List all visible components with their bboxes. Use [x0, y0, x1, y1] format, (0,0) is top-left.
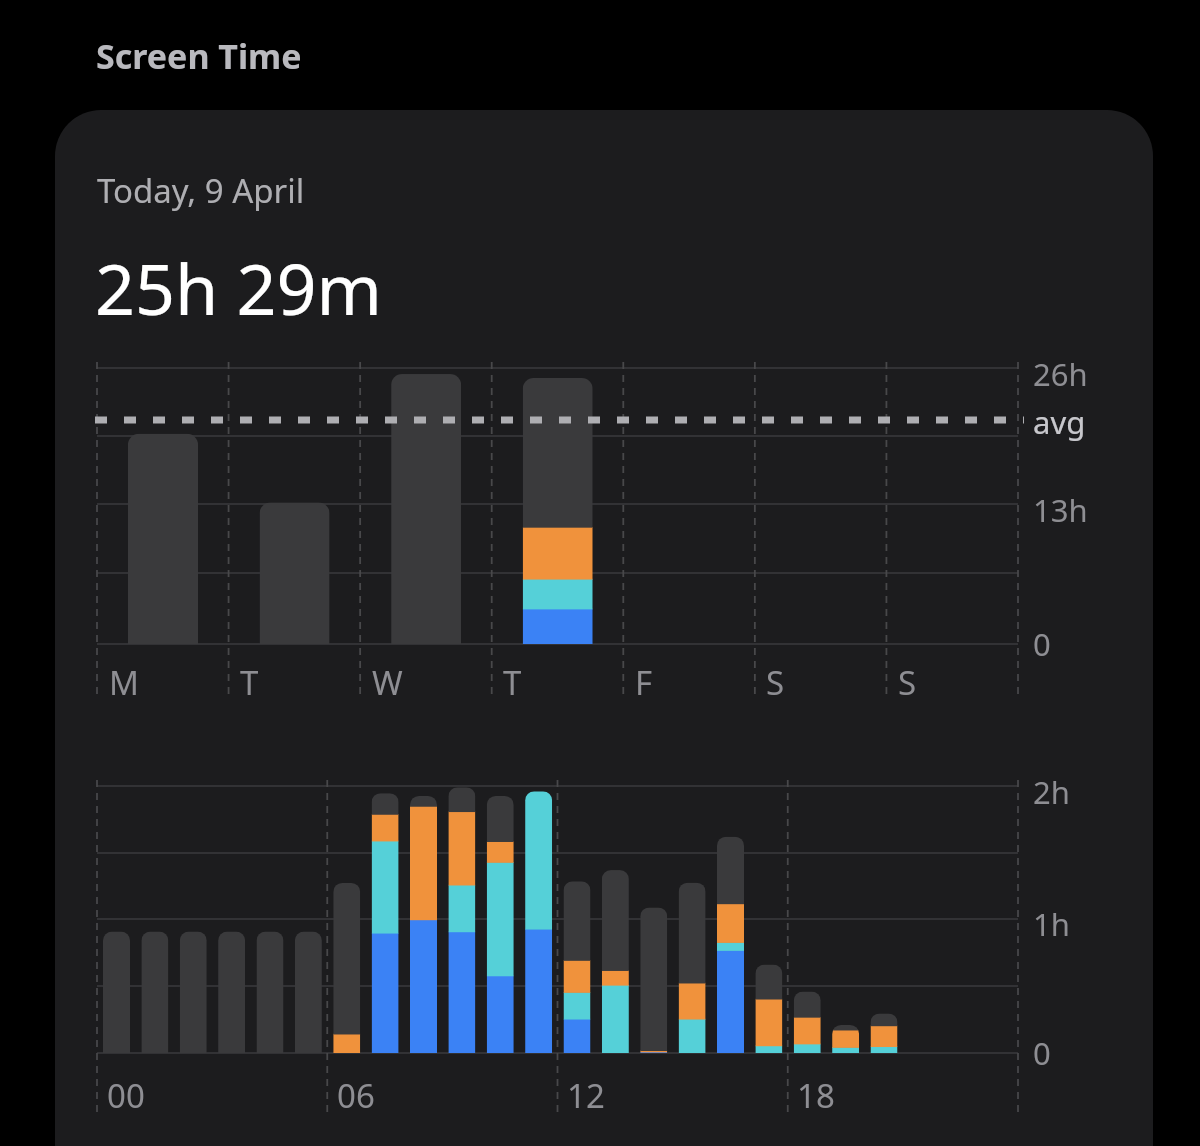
staticText: S: [766, 660, 785, 705]
staticText: avg: [1033, 401, 1086, 443]
staticText: 13h: [1033, 489, 1088, 531]
staticText: W: [372, 660, 403, 705]
staticText: Screen Time: [96, 33, 302, 79]
staticText: Today, 9 April: [97, 168, 305, 213]
staticText: T: [240, 660, 259, 705]
staticText: 00: [107, 1073, 145, 1118]
staticText: S: [898, 660, 917, 705]
staticText: F: [635, 660, 653, 705]
staticText: 1h: [1033, 903, 1070, 945]
staticText: 0: [1033, 1032, 1051, 1074]
other: Screen Time usage chart: [0, 0, 1200, 1146]
staticText: 18: [797, 1073, 835, 1118]
button[interactable]: Screen Time: [0, 0, 1200, 1146]
staticText: 25h 29m: [95, 240, 383, 335]
staticText: T: [503, 660, 522, 705]
staticText: 12: [567, 1073, 605, 1118]
staticText: 0: [1033, 623, 1051, 665]
staticText: 06: [337, 1073, 375, 1118]
staticText: M: [109, 660, 139, 705]
staticText: 2h: [1033, 771, 1070, 813]
staticText: 26h: [1033, 353, 1088, 395]
